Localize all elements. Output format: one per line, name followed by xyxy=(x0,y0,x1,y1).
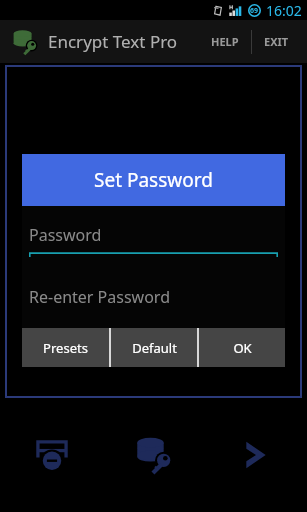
button[interactable]: Next xyxy=(205,398,307,512)
staticText: HELP xyxy=(211,34,239,49)
staticText: Default xyxy=(132,339,177,357)
staticText: 16:02 xyxy=(266,1,302,20)
staticText: Presets xyxy=(43,339,88,357)
button[interactable]: EXIT xyxy=(252,20,301,63)
button[interactable]: Database key xyxy=(103,398,205,512)
button[interactable]: Password xyxy=(29,224,278,257)
button[interactable]: Re-enter Password xyxy=(29,286,278,308)
button[interactable]: Default xyxy=(111,328,197,367)
staticText: 69 xyxy=(250,6,259,16)
staticText: Set Password xyxy=(94,167,213,193)
staticText: OK xyxy=(233,339,252,357)
staticText: Re-enter Password xyxy=(29,286,170,308)
button[interactable]: HELP xyxy=(199,20,251,63)
button[interactable]: Decrypt xyxy=(0,398,103,512)
staticText: Encrypt Text Pro xyxy=(48,30,178,53)
staticText: EXIT xyxy=(264,34,289,49)
button[interactable]: Presets xyxy=(22,328,109,367)
button[interactable]: OK xyxy=(199,328,285,367)
staticText: Password xyxy=(29,224,102,246)
